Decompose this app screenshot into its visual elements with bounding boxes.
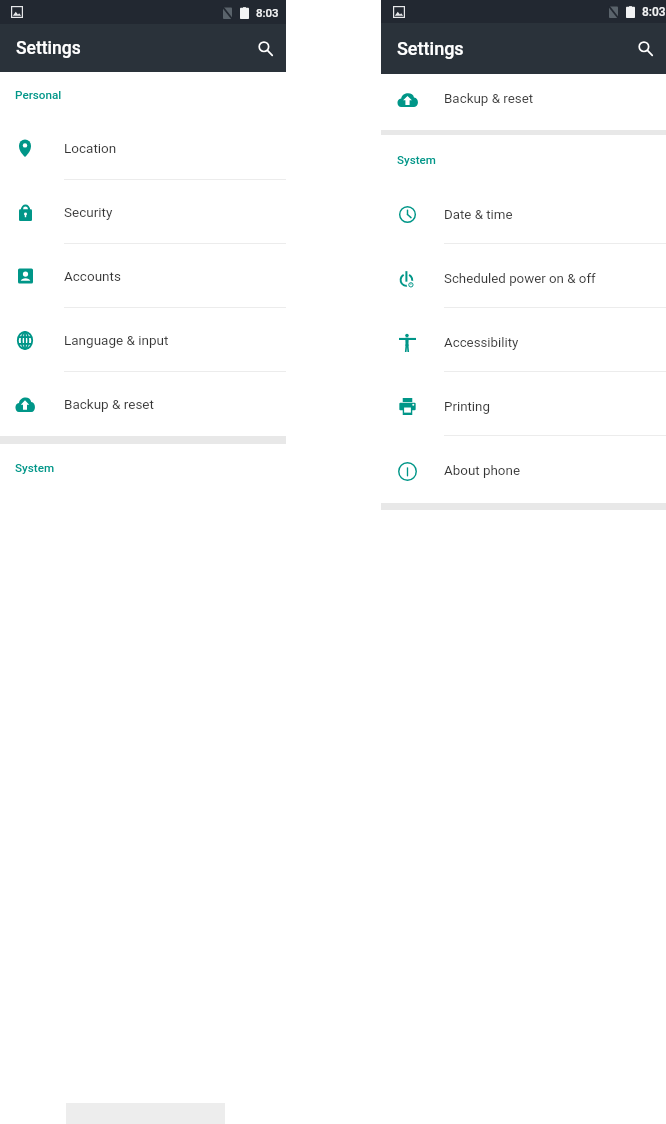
- staticText: Security: [64, 204, 113, 220]
- button[interactable]: Search: [630, 33, 661, 64]
- staticText: Backup & reset: [444, 91, 534, 107]
- staticText: Backup & reset: [64, 396, 154, 412]
- staticText: Settings: [397, 38, 464, 59]
- staticText: Date & time: [444, 207, 513, 223]
- staticText: Scheduled power on & off: [444, 271, 596, 287]
- staticText: Accessibility: [444, 335, 519, 351]
- button[interactable]: About phone: [381, 439, 666, 503]
- staticText: System: [397, 153, 436, 167]
- staticText: Printing: [444, 399, 490, 415]
- staticText: 8:03: [256, 6, 279, 19]
- button[interactable]: Security: [0, 180, 286, 244]
- button[interactable]: Date & time: [381, 183, 666, 247]
- staticText: System: [15, 461, 55, 475]
- staticText: Language & input: [64, 332, 169, 348]
- button[interactable]: Search: [250, 33, 281, 64]
- button[interactable]: Location: [0, 116, 286, 180]
- button[interactable]: Scheduled power on & off: [381, 247, 666, 311]
- staticText: About phone: [444, 463, 521, 479]
- button[interactable]: Language & input: [0, 308, 286, 372]
- button[interactable]: Accessibility: [381, 311, 666, 375]
- button[interactable]: Printing: [381, 375, 666, 439]
- button[interactable]: Backup & reset: [381, 74, 666, 130]
- staticText: Accounts: [64, 268, 121, 284]
- staticText: 8:03: [642, 5, 666, 19]
- staticText: Personal: [15, 88, 62, 102]
- staticText: Settings: [16, 38, 81, 59]
- button[interactable]: Accounts: [0, 244, 286, 308]
- staticText: Location: [64, 140, 117, 156]
- button[interactable]: Backup & reset: [0, 372, 286, 436]
